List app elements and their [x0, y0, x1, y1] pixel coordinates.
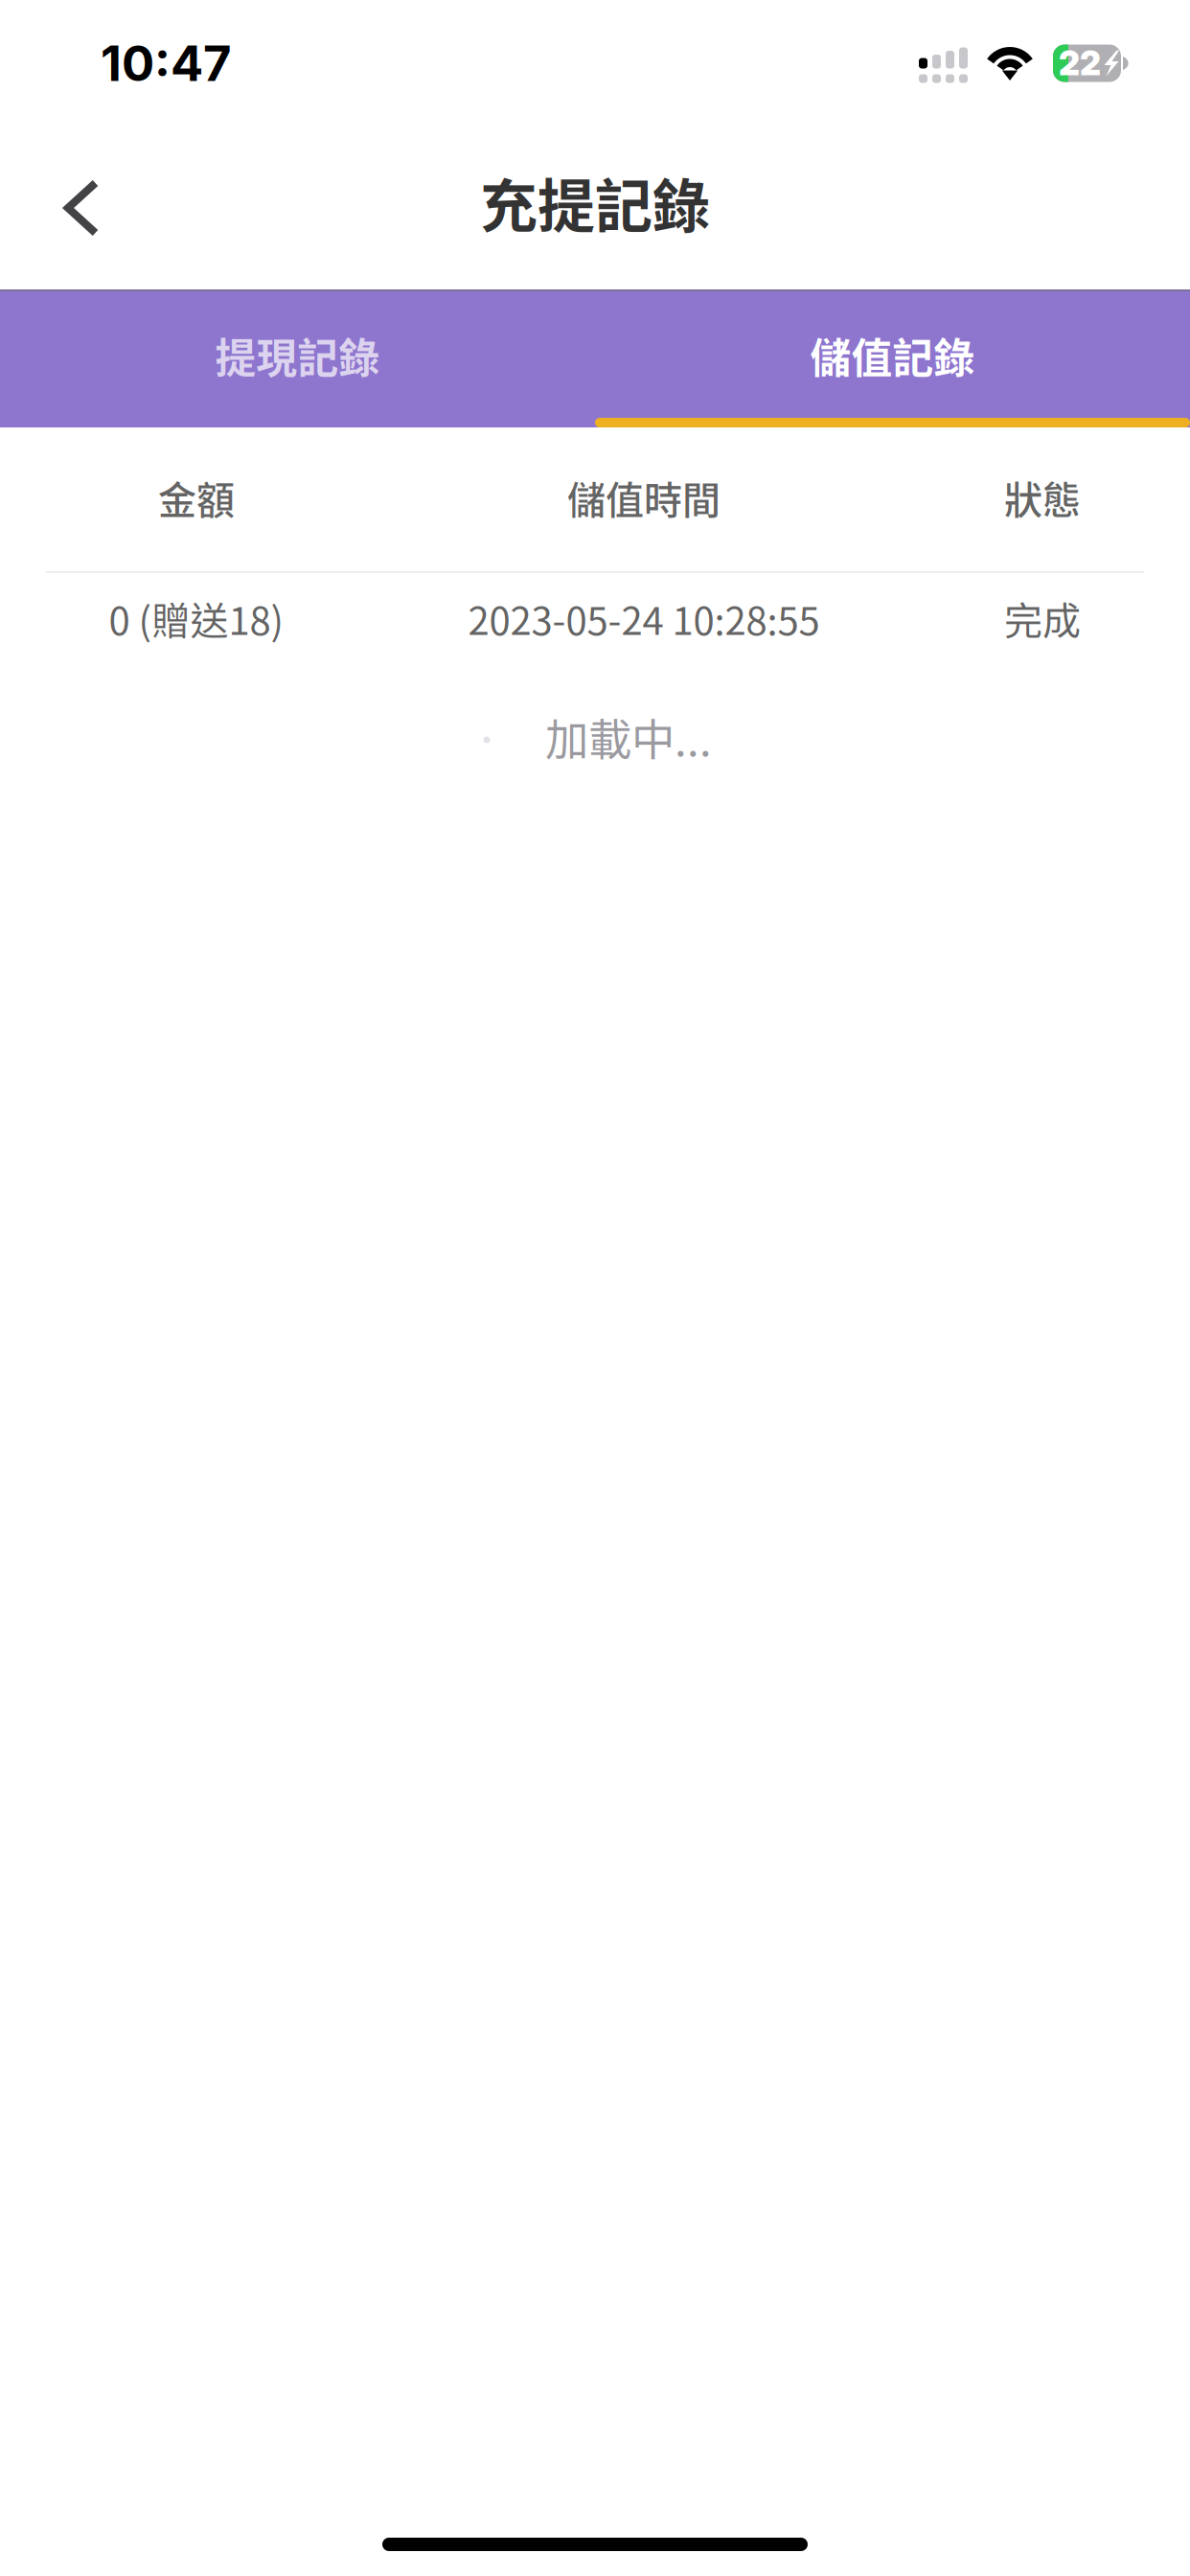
staticText: 2023-05-24 10:28:55 — [468, 590, 820, 646]
staticText: 完成 — [1004, 590, 1081, 646]
button[interactable]: Back — [0, 149, 140, 266]
staticText: 提現記錄 — [215, 326, 380, 385]
button[interactable]: 提現記錄 — [0, 289, 595, 427]
staticText: 充提記錄 — [480, 161, 710, 244]
staticText: 0 (贈送18) — [109, 590, 284, 646]
staticText: 儲值記錄 — [810, 326, 975, 385]
staticText: 金額 — [158, 470, 235, 525]
staticText: 狀態 — [1004, 470, 1081, 525]
staticText: 22 — [1059, 43, 1101, 83]
staticText: 10:47 — [101, 34, 231, 93]
staticText: 加載中... — [545, 706, 712, 768]
button[interactable]: 儲值記錄 — [595, 289, 1190, 427]
staticText: 儲值時間 — [567, 470, 721, 525]
